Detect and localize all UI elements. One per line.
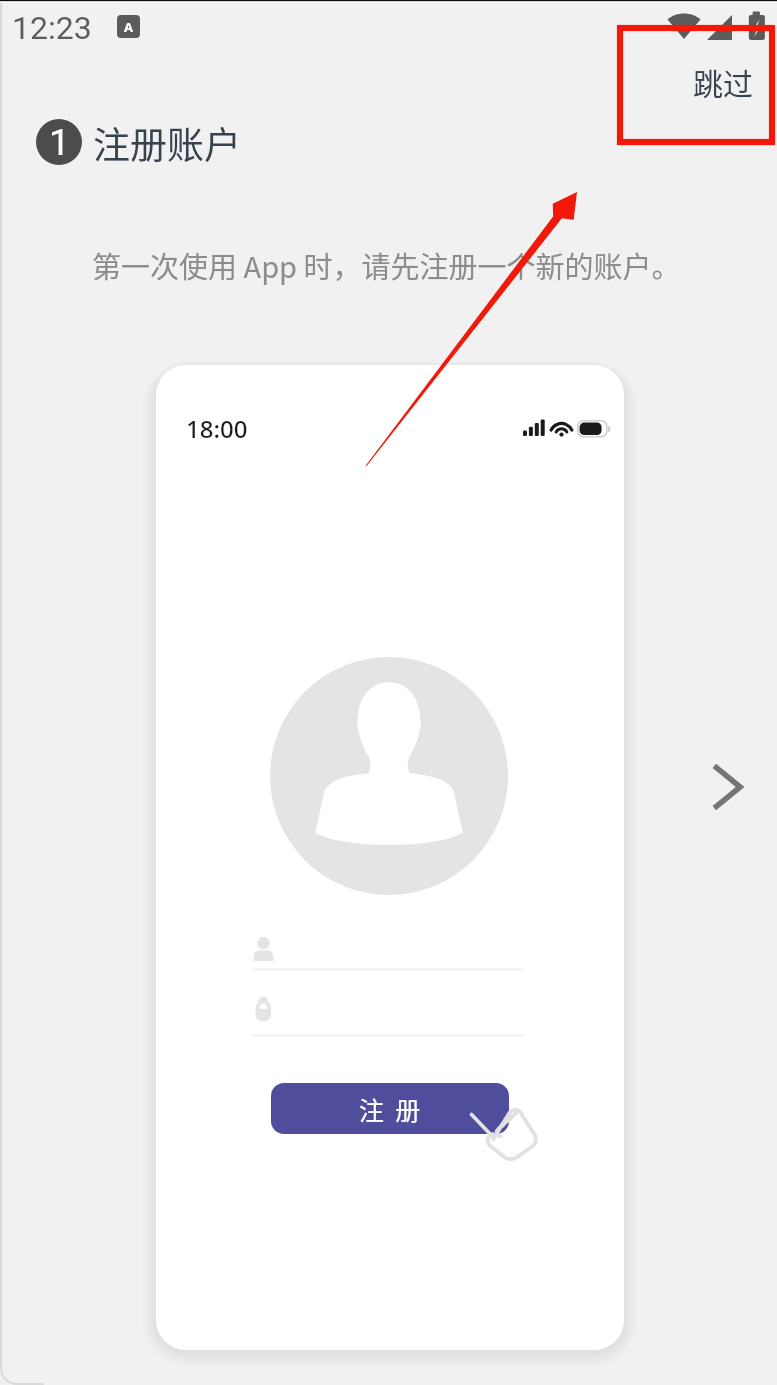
staticText: A xyxy=(124,18,133,36)
staticText: 第一次使用 App 时，请先注册一个新的账户。 xyxy=(92,244,681,286)
staticText: 注册账户 xyxy=(93,116,241,170)
button[interactable]: 注 册 xyxy=(271,1083,509,1134)
staticText: 18:00 xyxy=(186,412,248,445)
staticText: 12:23 xyxy=(12,9,92,47)
button[interactable]: 跳过 xyxy=(679,48,767,115)
staticText: 1 xyxy=(49,121,70,164)
button[interactable]: Next page xyxy=(692,752,762,822)
staticText: 跳过 xyxy=(693,60,753,103)
staticText: 注 册 xyxy=(359,1091,421,1127)
